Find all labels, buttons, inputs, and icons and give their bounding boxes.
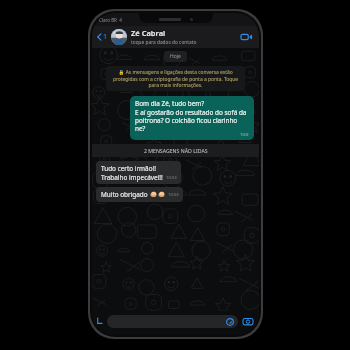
button[interactable]: Muito obrigado <box>96 187 183 202</box>
button[interactable]: Zé Cabral <box>131 28 239 46</box>
button[interactable]: Attach <box>96 317 104 325</box>
staticText: Hoje <box>170 53 181 60</box>
button[interactable] <box>111 29 127 45</box>
button[interactable]: Stickers <box>226 318 234 326</box>
staticText: 10:53 <box>168 192 179 198</box>
button[interactable]: Stickers <box>107 315 238 328</box>
button[interactable]: Back <box>95 29 110 45</box>
staticText: Bom dia Zé, tudo bem? E aí gostarão do r… <box>135 99 249 132</box>
button[interactable]: Hoje <box>164 51 187 62</box>
staticText: Claro BR 4 <box>99 17 122 23</box>
button[interactable]: Camera <box>242 316 254 327</box>
staticText: 2 MENSAGENS NÃO LIDAS <box>144 147 208 154</box>
button[interactable]: Video call <box>239 31 254 43</box>
button[interactable]: Bom dia Zé, tudo bem? E aí gostarão do r… <box>130 96 254 140</box>
button[interactable]: 🔒 As mensagens e ligações desta conversa… <box>106 66 245 91</box>
staticText: 1 <box>103 32 108 42</box>
button[interactable]: Tudo certo irmão!! Trabalho impecável!! <box>96 161 181 184</box>
staticText: Muito obrigado <box>101 190 148 199</box>
staticText: 10:53 <box>166 175 177 181</box>
staticText: 🔒 As mensagens e ligações desta conversa… <box>112 69 239 88</box>
staticText: 10:0 <box>240 132 249 138</box>
staticText: Zé Cabral <box>131 28 166 38</box>
staticText: toque para dados do contato <box>131 39 197 46</box>
staticText: Tudo certo irmão!! Trabalho impecável!! <box>101 164 163 181</box>
